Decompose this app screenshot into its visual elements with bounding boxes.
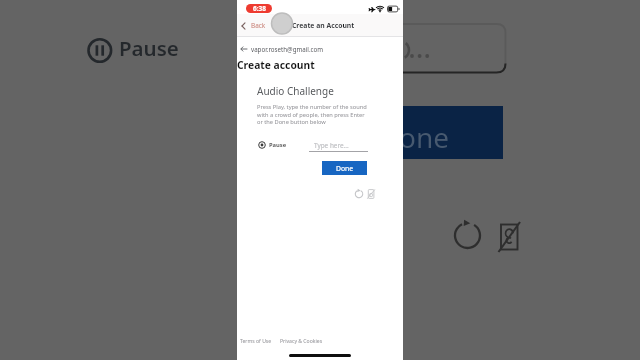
button[interactable]: Done bbox=[322, 161, 367, 175]
button[interactable]: Back bbox=[241, 14, 266, 37]
staticText: vapor.roseth@gmail.com bbox=[251, 45, 324, 53]
staticText: Done bbox=[336, 164, 354, 173]
button[interactable]: Terms of Use bbox=[240, 338, 272, 345]
staticText: Create account bbox=[237, 58, 315, 72]
button[interactable]: Privacy & Cookies bbox=[280, 338, 323, 345]
staticText: Create an Account bbox=[292, 21, 355, 30]
staticText: Audio Challenge bbox=[257, 84, 334, 98]
button[interactable]: Pause bbox=[258, 139, 287, 151]
staticText: one bbox=[399, 118, 450, 156]
staticText: Type here... bbox=[314, 141, 349, 150]
staticText: Pause bbox=[119, 34, 179, 62]
button[interactable]: Get a new challenge bbox=[354, 189, 364, 199]
staticText: 6:38 bbox=[253, 4, 266, 13]
staticText: Pause bbox=[269, 141, 287, 149]
staticText: Press Play, type the number of the sound… bbox=[257, 103, 367, 125]
button[interactable]: Audio off bbox=[366, 189, 376, 199]
staticText: Back bbox=[251, 21, 266, 30]
button[interactable]: Type here... bbox=[309, 138, 368, 154]
